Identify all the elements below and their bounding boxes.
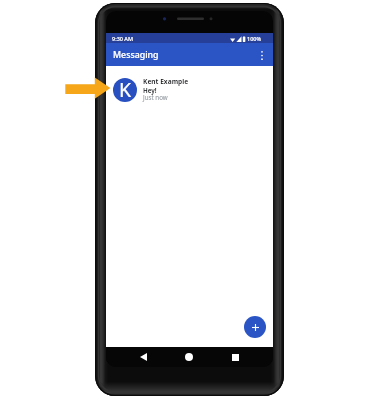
button[interactable]: K [106,75,273,105]
staticText: 100% [247,35,262,42]
staticText: Hey! [143,86,157,94]
staticText: Just now [143,93,168,101]
staticText: K [119,78,132,100]
button[interactable]: Recents [225,347,245,367]
staticText: Kent Example [143,77,189,86]
button[interactable]: Home [179,347,199,367]
staticText: Messaging [113,49,159,61]
button[interactable]: New conversation [244,316,266,338]
button[interactable]: More options [255,48,269,62]
button[interactable]: Back [133,347,153,367]
staticText: 9:30 AM [112,35,134,42]
